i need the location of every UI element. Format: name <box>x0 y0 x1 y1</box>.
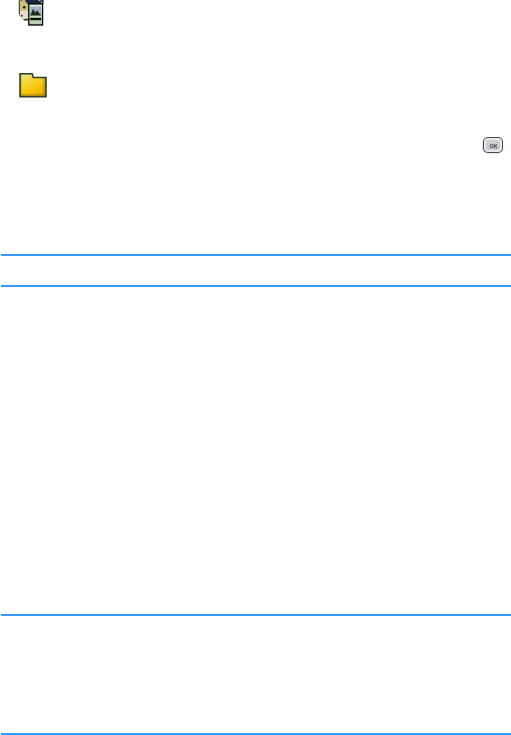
staticText: OK <box>489 142 498 149</box>
button[interactable]: Folder <box>20 73 46 97</box>
button[interactable]: Image <box>18 0 44 27</box>
button[interactable]: OK <box>483 137 503 153</box>
